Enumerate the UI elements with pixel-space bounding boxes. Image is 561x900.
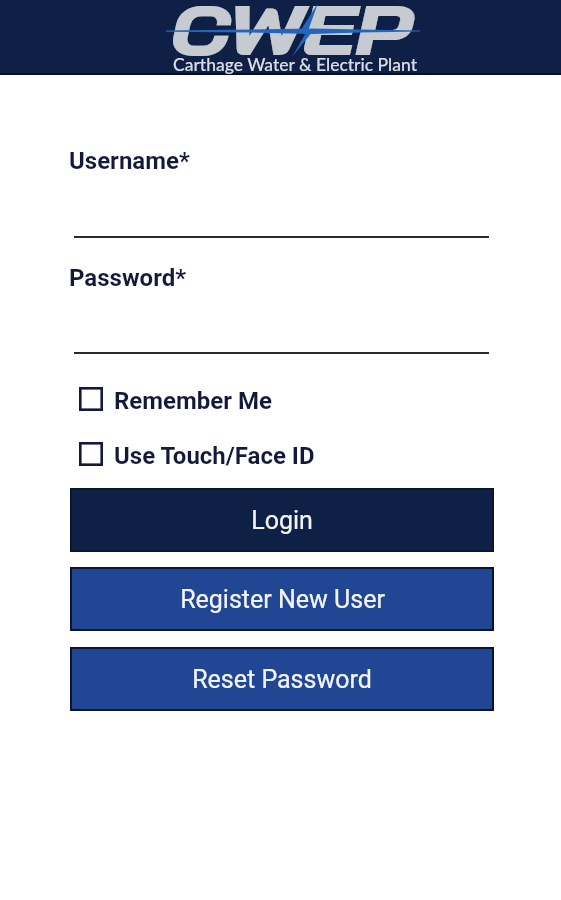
staticText: Register New User [180, 585, 385, 614]
button[interactable]: Register New User [72, 569, 492, 629]
staticText: Reset Password [192, 665, 372, 694]
button[interactable]: Login [72, 490, 492, 550]
staticText: Username* [69, 147, 190, 175]
button[interactable]: Use Touch/Face ID [79, 442, 315, 466]
staticText: Password* [69, 264, 187, 292]
button[interactable]: Reset Password [72, 649, 492, 709]
staticText: Carthage Water & Electric Plant [173, 54, 418, 75]
button[interactable]: Remember Me [79, 387, 273, 411]
staticText: CWEP [171, 0, 411, 71]
staticText: Use Touch/Face ID [114, 442, 315, 466]
staticText: Remember Me [114, 387, 273, 411]
staticText: Login [251, 506, 313, 535]
